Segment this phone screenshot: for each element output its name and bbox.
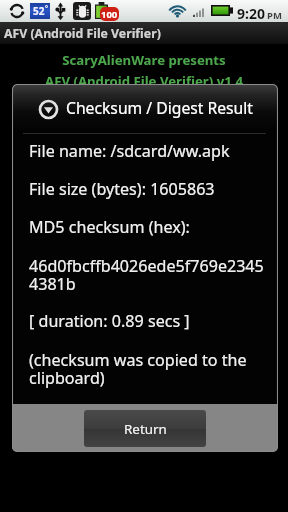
staticText: 52	[33, 4, 45, 18]
staticText: (checksum was copied to the clipboard)	[29, 349, 270, 389]
staticText: AFV (Android File Verifier)	[4, 25, 161, 42]
staticText: MD5 checksum (hex):	[29, 216, 270, 238]
staticText: File name: /sdcard/ww.apk	[29, 140, 270, 162]
button[interactable]: Return	[84, 410, 206, 447]
staticText: File size (bytes): 1605863	[29, 178, 270, 200]
staticText: [ duration: 0.89 secs ]	[29, 310, 270, 332]
staticText: 46d0fbcffb4026ede5f769e23454381b	[29, 255, 270, 295]
staticText: 9:20	[237, 4, 265, 23]
staticText: ScaryAlienWare presents	[0, 51, 288, 69]
staticText: Checksum / Digest Result	[66, 97, 254, 118]
staticText: Return	[124, 420, 167, 438]
staticText: °	[45, 4, 48, 14]
staticText: PM	[267, 9, 282, 22]
staticText: 100	[101, 8, 118, 21]
other: Expand	[38, 99, 59, 120]
staticText: AFV (Android File Verifier) v1.4	[0, 72, 288, 90]
